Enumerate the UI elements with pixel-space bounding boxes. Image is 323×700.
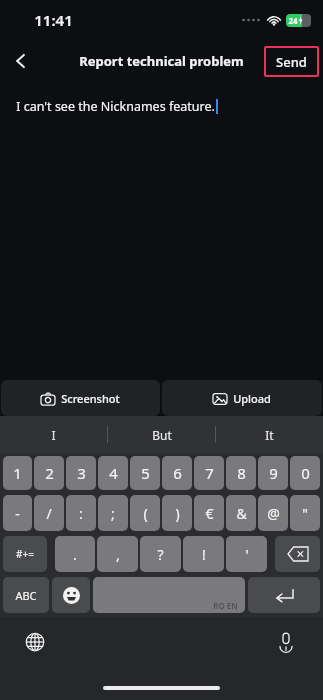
staticText: ;	[111, 504, 115, 523]
staticText: 6	[173, 463, 182, 483]
staticText: ABC	[15, 588, 37, 603]
staticText: Report technical problem	[79, 52, 244, 70]
staticText: 8	[237, 463, 246, 483]
button[interactable]: 0	[290, 456, 320, 490]
staticText: €	[205, 504, 214, 523]
button[interactable]: Upload	[162, 380, 322, 416]
button[interactable]: /	[34, 495, 64, 531]
button[interactable]: (	[130, 495, 160, 531]
button[interactable]: It	[216, 416, 323, 453]
button[interactable]: 2	[34, 456, 64, 490]
staticText: /	[46, 504, 52, 523]
button[interactable]: ,	[97, 536, 138, 572]
button[interactable]: 9	[258, 456, 288, 490]
button[interactable]: !	[183, 536, 224, 572]
button[interactable]: €	[194, 495, 224, 531]
button[interactable]: I can't see the Nicknames feature.	[0, 82, 323, 380]
button[interactable]: .	[55, 536, 95, 572]
button[interactable]: ;	[98, 495, 128, 531]
button[interactable]: But	[108, 416, 215, 453]
button[interactable]: 8	[226, 456, 256, 490]
staticText: (	[143, 504, 148, 523]
staticText: ,	[116, 545, 120, 564]
staticText: '	[245, 545, 249, 564]
button[interactable]: "	[290, 495, 320, 531]
staticText: 5	[141, 463, 150, 483]
staticText: "	[302, 504, 308, 523]
staticText: 2	[45, 463, 54, 483]
button[interactable]: 1	[3, 456, 32, 490]
staticText: Screenshot	[61, 391, 120, 406]
button[interactable]: Screenshot	[1, 380, 160, 416]
button[interactable]: 5	[130, 456, 160, 490]
staticText: I can't see the Nicknames feature.	[16, 98, 215, 115]
button[interactable]: Space	[93, 577, 245, 613]
staticText: )	[175, 504, 180, 523]
button[interactable]: 3	[66, 456, 96, 490]
staticText: 24	[288, 15, 298, 26]
button[interactable]: @	[258, 495, 288, 531]
button[interactable]: )	[162, 495, 192, 531]
staticText: RO EN	[213, 600, 238, 611]
staticText: It	[265, 427, 274, 443]
button[interactable]: '	[226, 536, 267, 572]
staticText: 3	[77, 463, 86, 483]
button[interactable]: :	[66, 495, 96, 531]
staticText: 1	[13, 463, 22, 483]
button[interactable]: Emoji	[52, 577, 90, 613]
staticText: 4	[109, 463, 118, 483]
staticText: Send	[276, 53, 307, 71]
staticText: #+=	[16, 547, 34, 561]
button[interactable]: &	[226, 495, 256, 531]
staticText: -	[15, 504, 20, 523]
button[interactable]: Enter	[248, 577, 320, 613]
staticText: But	[152, 427, 172, 443]
staticText: @	[267, 504, 280, 523]
button[interactable]: Backspace	[275, 536, 320, 572]
staticText: ?	[157, 545, 164, 564]
staticText: :	[79, 504, 83, 523]
staticText: 9	[269, 463, 278, 483]
button[interactable]: ABC	[3, 577, 49, 613]
button[interactable]: -	[3, 495, 32, 531]
staticText: 0	[301, 463, 310, 483]
button[interactable]: Voice input	[269, 625, 303, 659]
button[interactable]: ?	[140, 536, 181, 572]
button[interactable]: Back	[0, 40, 42, 82]
button[interactable]: Change keyboard language	[18, 625, 52, 659]
button[interactable]: Send	[264, 46, 319, 77]
button[interactable]: 4	[98, 456, 128, 490]
button[interactable]: #+=	[3, 536, 47, 572]
button[interactable]: 7	[194, 456, 224, 490]
staticText: .	[73, 545, 77, 564]
staticText: Upload	[233, 391, 271, 406]
staticText: &	[236, 504, 247, 523]
staticText: I	[51, 427, 56, 443]
staticText: 7	[205, 463, 214, 483]
button[interactable]: 6	[162, 456, 192, 490]
staticText: 11:41	[34, 10, 73, 30]
button[interactable]: I	[0, 416, 107, 453]
staticText: !	[202, 545, 206, 564]
